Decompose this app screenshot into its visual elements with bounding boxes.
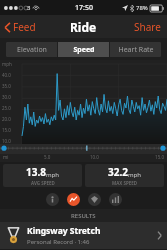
button[interactable]: Info — [46, 193, 59, 206]
staticText: 40.0 — [2, 72, 11, 78]
staticText: Elevation — [17, 45, 47, 55]
staticText: Kingsway Stretch — [27, 225, 101, 237]
staticText: 25.0 — [2, 105, 11, 111]
staticText: Ride — [70, 19, 97, 35]
button[interactable]: Share — [128, 16, 167, 38]
staticText: AVG SPEED — [31, 180, 55, 186]
staticText: mi — [3, 154, 44, 160]
staticText: 10.0 — [90, 154, 136, 160]
staticText: MAX SPEED — [112, 180, 138, 186]
staticText: Personal Record · 1:46 — [27, 238, 90, 246]
staticText: 30.0 — [2, 94, 11, 100]
staticText: 15.0 — [136, 154, 164, 160]
staticText: Feed — [13, 20, 36, 34]
staticText: 15.0 — [2, 127, 11, 133]
staticText: RESULTS — [71, 212, 96, 220]
staticText: 5.0 — [44, 154, 90, 160]
staticText: mph — [46, 171, 60, 179]
button[interactable]: Feed — [0, 16, 42, 38]
button[interactable]: Elevation — [6, 42, 57, 57]
staticText: 32.2 — [108, 165, 128, 179]
button[interactable]: 13.8 — [3, 164, 82, 187]
button[interactable]: Kingsway Stretch — [0, 222, 167, 249]
button[interactable]: Map — [88, 193, 101, 206]
staticText: 10.0 — [2, 138, 11, 144]
staticText: Speed — [73, 45, 95, 55]
button[interactable]: 32.2 — [85, 164, 164, 187]
staticText: 35.0 — [2, 83, 11, 89]
staticText: 20.0 — [2, 116, 11, 122]
staticText: mph — [128, 171, 142, 179]
staticText: 13.8 — [26, 165, 46, 179]
button[interactable]: Splits — [109, 193, 122, 206]
staticText: Heart Rate — [118, 45, 154, 55]
staticText: 78% — [136, 4, 148, 12]
button[interactable]: Heart Rate — [110, 42, 161, 57]
staticText: mph — [2, 61, 12, 67]
staticText: 17:50 — [75, 3, 93, 13]
button[interactable]: Speed — [58, 42, 109, 57]
button[interactable]: Speed chart — [67, 193, 80, 206]
staticText: 3 — [27, 4, 31, 12]
